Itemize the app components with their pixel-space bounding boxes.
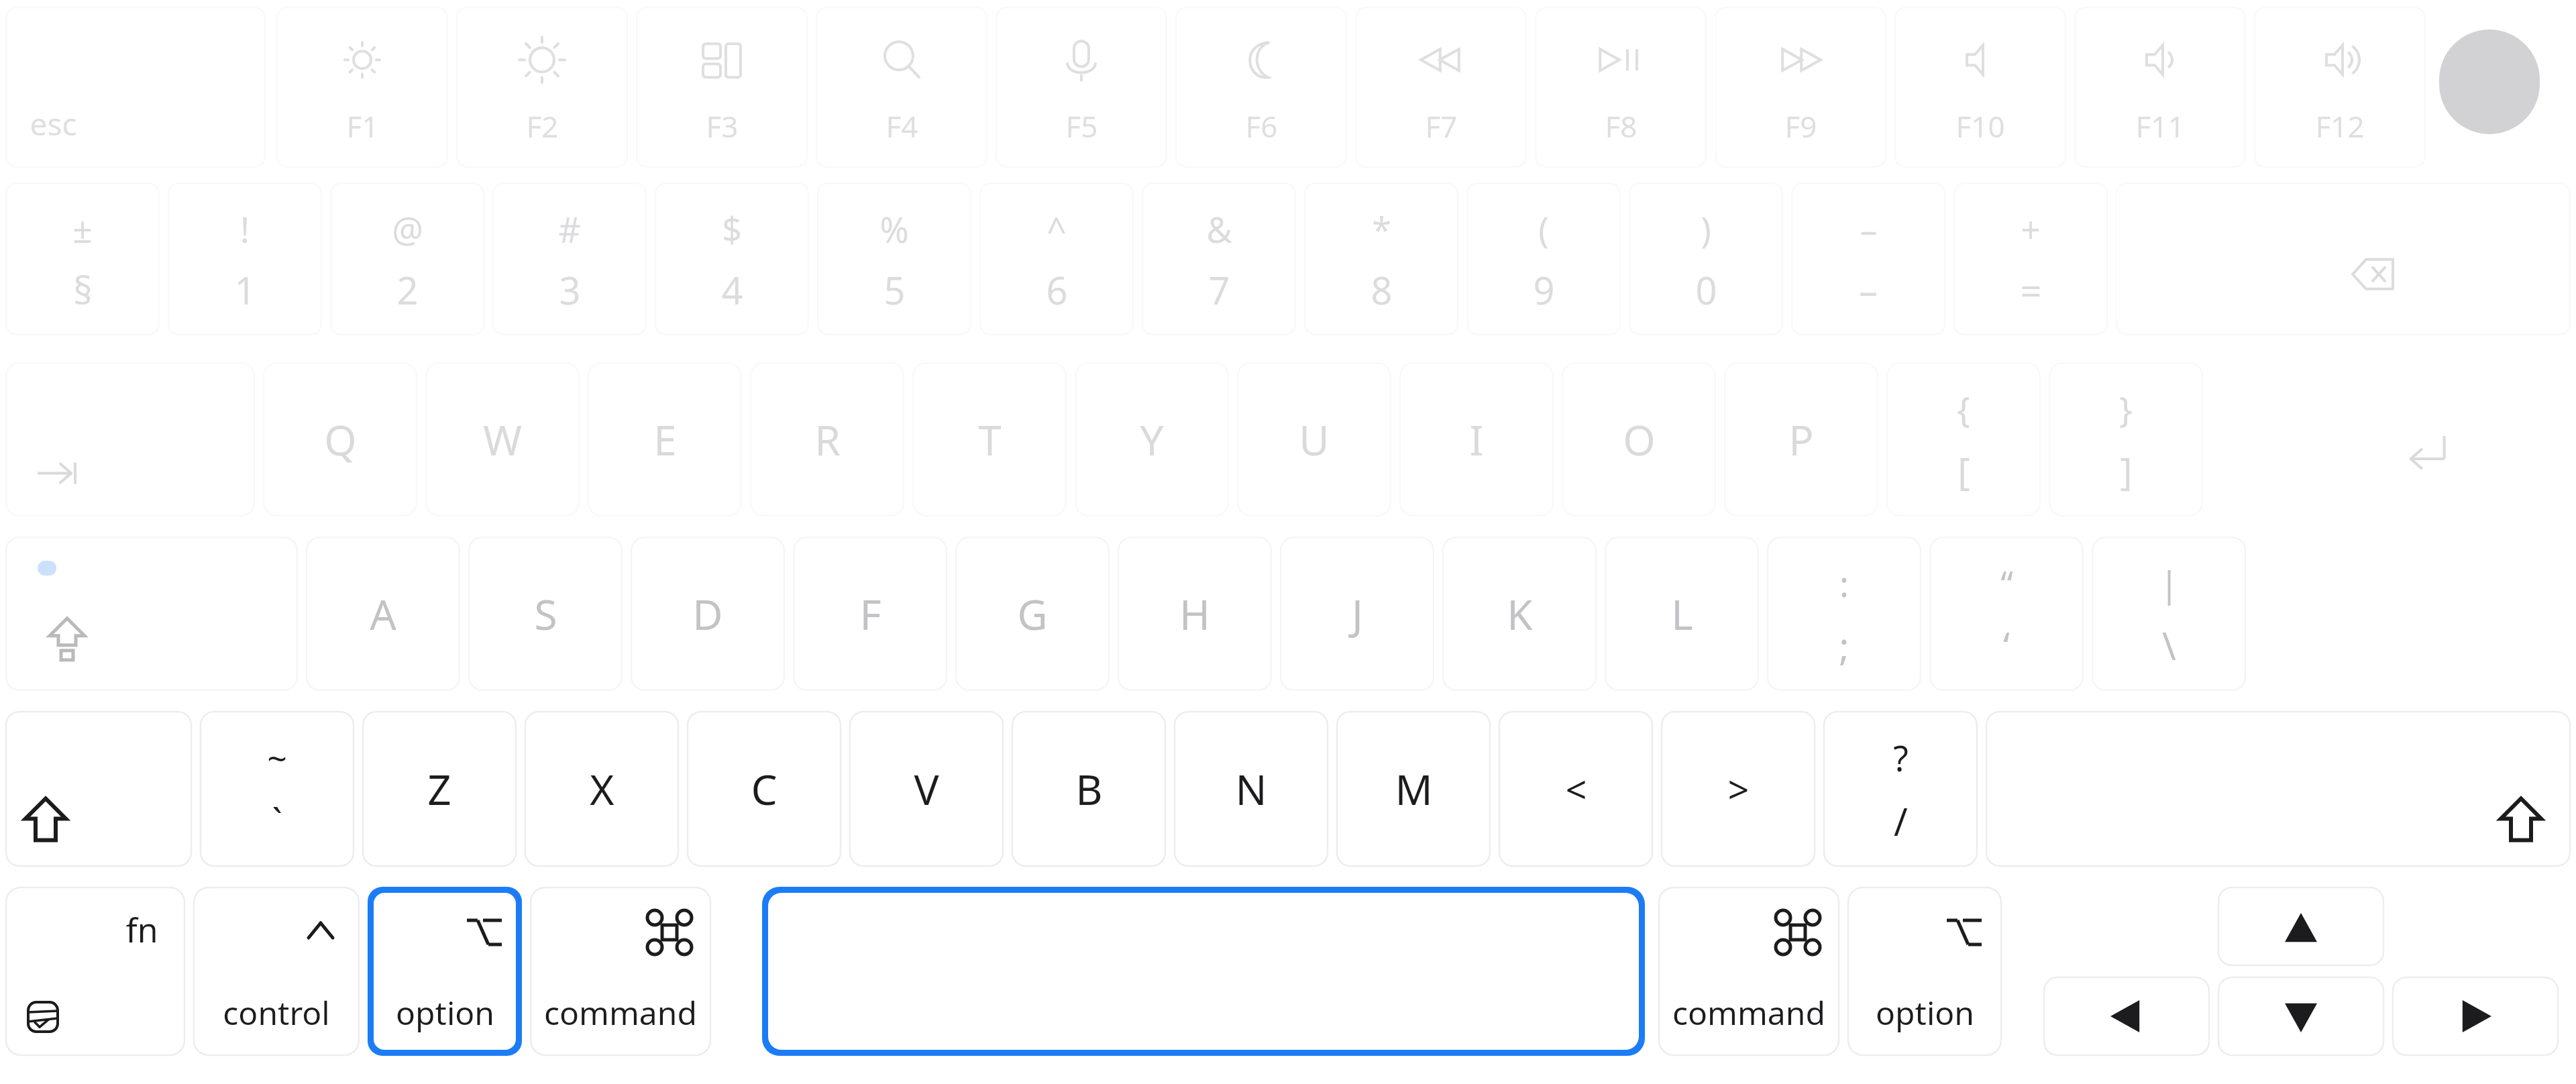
button[interactable] — [1075, 362, 1229, 517]
button[interactable] — [1953, 182, 2108, 335]
staticText: > — [1727, 763, 1750, 814]
button[interactable] — [1661, 711, 1815, 867]
button[interactable]: Shift — [1986, 711, 2571, 867]
button[interactable]: Fast forward — [1715, 7, 1886, 168]
button[interactable] — [530, 887, 711, 1056]
button[interactable] — [1724, 362, 1878, 517]
button[interactable] — [687, 711, 841, 867]
staticText: T — [978, 411, 1002, 468]
button[interactable] — [1237, 362, 1391, 517]
button[interactable] — [1142, 182, 1296, 335]
button[interactable]: Space — [762, 887, 1645, 1056]
button[interactable] — [168, 182, 322, 335]
button[interactable] — [1605, 537, 1759, 691]
button[interactable] — [1304, 182, 1458, 335]
button[interactable] — [979, 182, 1134, 335]
staticText: [ — [1957, 445, 1970, 496]
staticText: ! — [240, 205, 250, 253]
staticText: – — [1859, 264, 1878, 315]
staticText: B — [1075, 761, 1103, 817]
button[interactable]: Play or pause — [1535, 7, 1707, 168]
button[interactable] — [263, 362, 417, 517]
button[interactable] — [362, 711, 517, 867]
button[interactable] — [1847, 887, 2002, 1056]
button[interactable] — [1499, 711, 1653, 867]
button[interactable]: Volume down — [2074, 7, 2246, 168]
staticText: H — [1179, 586, 1210, 642]
button[interactable] — [1823, 711, 1978, 867]
button[interactable] — [492, 182, 647, 335]
button[interactable]: Dictation — [996, 7, 1167, 168]
button[interactable] — [1562, 362, 1716, 517]
button[interactable] — [1012, 711, 1166, 867]
button[interactable]: Rewind — [1355, 7, 1527, 168]
button[interactable] — [1929, 537, 2084, 691]
button[interactable]: Right arrow — [2392, 977, 2559, 1056]
button[interactable] — [468, 537, 623, 691]
button[interactable]: Do Not Disturb — [1175, 7, 1347, 168]
button[interactable] — [588, 362, 742, 517]
button[interactable] — [1886, 362, 2041, 517]
button[interactable] — [1336, 711, 1491, 867]
button[interactable] — [306, 537, 460, 691]
staticText: U — [1299, 411, 1330, 468]
button[interactable] — [1767, 537, 1921, 691]
button[interactable]: Touch ID — [2439, 30, 2540, 134]
button[interactable] — [1629, 182, 1783, 335]
button[interactable] — [793, 537, 947, 691]
button[interactable]: Up arrow — [2218, 887, 2384, 966]
button[interactable] — [525, 711, 679, 867]
button[interactable] — [655, 182, 809, 335]
staticText: E — [653, 411, 677, 468]
button[interactable] — [2049, 362, 2203, 517]
button[interactable] — [5, 182, 160, 335]
button[interactable] — [1658, 887, 1839, 1056]
staticText: X — [590, 761, 614, 817]
button[interactable] — [1442, 537, 1597, 691]
button[interactable] — [1466, 182, 1621, 335]
staticText: ( — [1538, 205, 1549, 253]
staticText: { — [1957, 385, 1970, 433]
button[interactable]: Left arrow — [2043, 977, 2210, 1056]
button[interactable] — [1118, 537, 1272, 691]
button[interactable] — [193, 887, 360, 1056]
button[interactable]: Down arrow — [2218, 977, 2384, 1056]
staticText: C — [751, 761, 777, 817]
button[interactable] — [912, 362, 1067, 517]
button[interactable] — [2092, 537, 2246, 691]
staticText: J — [1352, 586, 1363, 642]
staticText: F5 — [1065, 106, 1098, 146]
button[interactable] — [750, 362, 904, 517]
staticText: F3 — [706, 106, 739, 146]
button[interactable]: Volume up — [2254, 7, 2426, 168]
button[interactable] — [955, 537, 1110, 691]
staticText: ~ — [267, 734, 287, 781]
button[interactable] — [200, 711, 354, 867]
button[interactable] — [1399, 362, 1554, 517]
button[interactable]: Shift — [5, 711, 192, 867]
button[interactable]: Mission Control — [636, 7, 808, 168]
button[interactable] — [330, 182, 484, 335]
staticText: ] — [2120, 445, 2133, 496]
button[interactable]: Brightness down — [276, 7, 448, 168]
staticText: Q — [324, 411, 357, 468]
button[interactable] — [368, 887, 522, 1056]
button[interactable] — [5, 887, 185, 1056]
button[interactable] — [849, 711, 1004, 867]
button[interactable] — [631, 537, 785, 691]
button[interactable]: Brightness up — [456, 7, 628, 168]
button[interactable] — [1280, 537, 1434, 691]
button[interactable] — [425, 362, 580, 517]
button[interactable]: Spotlight — [816, 7, 987, 168]
button[interactable] — [817, 182, 971, 335]
staticText: 7 — [1208, 264, 1230, 315]
button[interactable]: Caps lock — [5, 537, 298, 691]
button[interactable]: Mute — [1894, 7, 2066, 168]
button[interactable] — [1174, 711, 1328, 867]
staticText: F6 — [1245, 106, 1278, 146]
